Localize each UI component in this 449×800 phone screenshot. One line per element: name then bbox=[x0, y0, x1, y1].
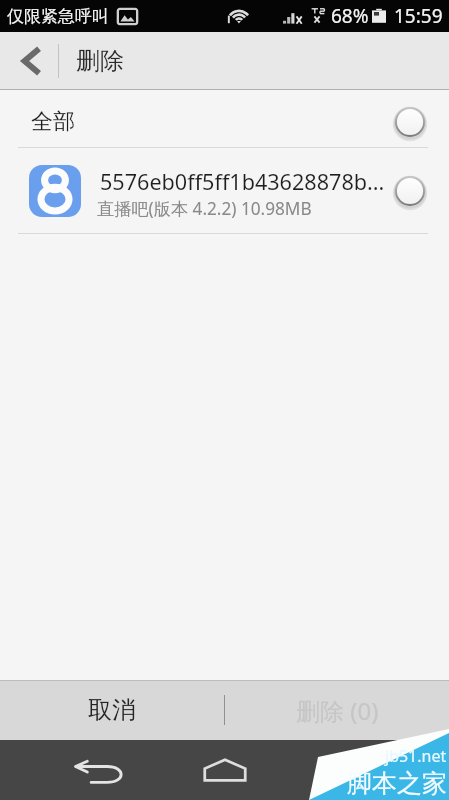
button[interactable]: 全部 bbox=[0, 90, 449, 148]
button[interactable]: Back bbox=[0, 740, 149, 800]
button[interactable]: Home bbox=[149, 740, 298, 800]
button[interactable]: 5576eb0ff5ff1b43628878b... bbox=[0, 148, 449, 234]
button[interactable]: 删除 (0) bbox=[225, 680, 449, 740]
staticText: 脚本之家 bbox=[347, 768, 447, 799]
staticText: 68% bbox=[331, 3, 369, 29]
staticText: 5576eb0ff5ff1b43628878b... bbox=[100, 167, 385, 196]
staticText: 仅限紧急呼叫 bbox=[7, 6, 109, 27]
staticText: jb51.net bbox=[385, 745, 447, 767]
staticText: 取消 bbox=[88, 695, 136, 725]
staticText: 删除 bbox=[76, 46, 124, 76]
staticText: 全部 bbox=[31, 108, 75, 136]
staticText: 删除 (0) bbox=[296, 694, 379, 727]
button[interactable]: Back bbox=[0, 32, 58, 90]
staticText: 15:59 bbox=[394, 3, 443, 29]
staticText: 直播吧(版本 4.2.2) 10.98MB bbox=[97, 197, 312, 220]
button[interactable]: 取消 bbox=[0, 680, 224, 740]
